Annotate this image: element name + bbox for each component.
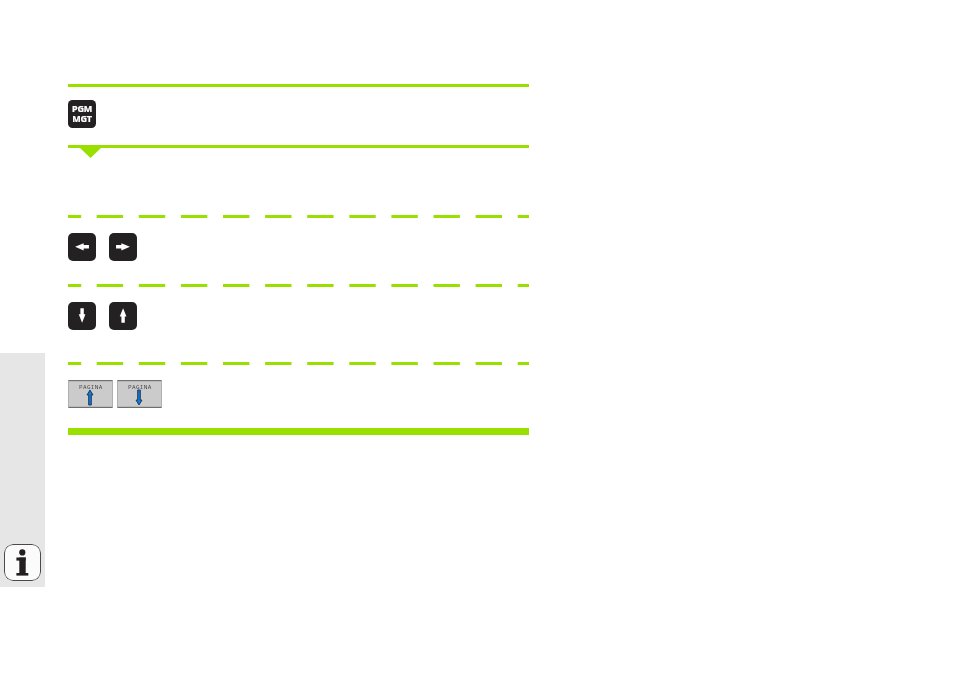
button[interactable]: Move left: [68, 233, 96, 261]
button[interactable]: Move right: [109, 233, 137, 261]
button[interactable]: PGM MGT: [68, 100, 96, 128]
button[interactable]: Move down: [68, 302, 96, 330]
button[interactable]: Page down: [117, 380, 162, 408]
button[interactable]: Page up: [68, 380, 113, 408]
staticText: PGM MGT: [72, 102, 92, 125]
staticText: PAGINA: [79, 383, 103, 391]
button[interactable]: Move up: [109, 302, 137, 330]
button[interactable]: Info: [4, 544, 41, 581]
staticText: PAGINA: [128, 383, 152, 391]
